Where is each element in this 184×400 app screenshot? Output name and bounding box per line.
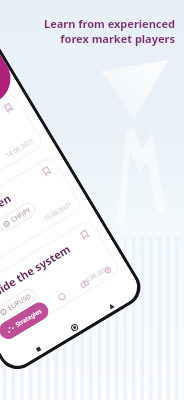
staticText: Strategies	[14, 307, 43, 329]
button[interactable]: CHFJPY	[0, 200, 38, 234]
staticText: Trading strategy	[0, 106, 10, 177]
button[interactable]: Settings	[95, 258, 120, 283]
staticText: H1	[16, 317, 24, 323]
button[interactable]: Recents	[29, 340, 48, 358]
button[interactable]: Japanese Yen	[0, 155, 83, 279]
staticText: 10.08.2021	[81, 264, 111, 286]
button[interactable]: Library	[72, 272, 97, 296]
button[interactable]: Home	[65, 318, 84, 336]
staticText: 18.08.2021	[5, 137, 35, 159]
button[interactable]: EURUSD	[0, 286, 39, 322]
button[interactable]: Strategies	[0, 299, 52, 342]
staticText: 15.08.2021	[43, 200, 73, 222]
staticText: Inside the system	[0, 233, 86, 304]
button[interactable]: Bookmark	[2, 102, 15, 114]
button[interactable]: H1	[3, 312, 30, 332]
staticText: Japanese Yen	[0, 170, 48, 241]
staticText: Learn from experienced forex market play…	[14, 16, 175, 46]
staticText: EURUSD	[6, 291, 33, 312]
button[interactable]: Trading strategy	[0, 91, 45, 216]
button[interactable]: Bookmark	[78, 228, 91, 241]
staticText: CHFJPY	[9, 205, 33, 224]
button[interactable]: Bookmark	[40, 165, 53, 177]
button[interactable]: Ideas	[50, 285, 75, 310]
button[interactable]: Back	[101, 296, 120, 315]
button[interactable]: Inside the system	[0, 218, 121, 342]
